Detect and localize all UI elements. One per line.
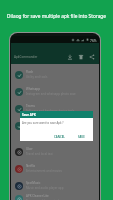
button[interactable]: Gmail (11, 117, 99, 134)
button[interactable]: SAVE (77, 134, 86, 140)
button[interactable]: Flash (11, 66, 99, 83)
staticText: Utility and tools (26, 75, 48, 79)
staticText: SAVE (78, 135, 85, 139)
staticText: Instagram and whatsapp photo save (26, 92, 76, 96)
staticText: Music and audio player app (26, 186, 64, 190)
button[interactable]: Download (66, 53, 74, 61)
staticText: Uber (26, 147, 33, 151)
staticText: Save APK (22, 113, 36, 117)
button[interactable]: SpotMusic (11, 177, 99, 194)
staticText: Whatsapp (26, 87, 40, 91)
staticText: Gmail (26, 121, 35, 125)
button[interactable]: Uber (11, 143, 99, 160)
staticText: CANCEL (54, 135, 65, 139)
button[interactable]: Whatsapp (11, 83, 99, 100)
staticText: SpotMusic (26, 181, 41, 185)
staticText: APK Cleaner Lite (26, 194, 49, 198)
staticText: Entertainment and movies (26, 169, 62, 173)
button[interactable]: Teams (11, 100, 99, 117)
staticText: Teams (26, 104, 35, 108)
staticText: Travel and local taxi (26, 152, 53, 156)
button[interactable]: CANCEL (53, 134, 66, 140)
staticText: ApkCommander (14, 55, 38, 59)
staticText: Dilaog for save multiple apk file into S… (0, 13, 113, 19)
staticText: Netflix (26, 164, 36, 168)
staticText: 76% (90, 38, 97, 42)
button[interactable]: Netflix (11, 160, 99, 177)
staticText: Software and hardware device tools (26, 109, 75, 113)
staticText: Flash (26, 70, 34, 74)
button[interactable]: APK Cleaner Lite (11, 194, 99, 200)
staticText: Are you sure want to save Apk ? (22, 121, 64, 125)
button[interactable]: Delete (77, 53, 85, 61)
button[interactable]: Share (88, 53, 96, 61)
